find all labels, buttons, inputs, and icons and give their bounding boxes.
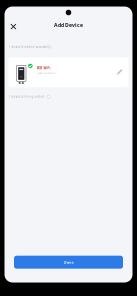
staticText: 1 device(s) added successfully [8, 45, 50, 49]
button[interactable]: Done [14, 256, 123, 269]
button[interactable]: Close [7, 18, 20, 31]
staticText: 0 device(s) being added [8, 95, 44, 99]
staticText: Added successfully [36, 71, 55, 74]
staticText: Add Device [54, 21, 83, 28]
staticText: Done [63, 259, 73, 265]
staticText: IRIS WiFi [36, 66, 50, 70]
button[interactable]: IRIS WiFi [8, 57, 128, 87]
